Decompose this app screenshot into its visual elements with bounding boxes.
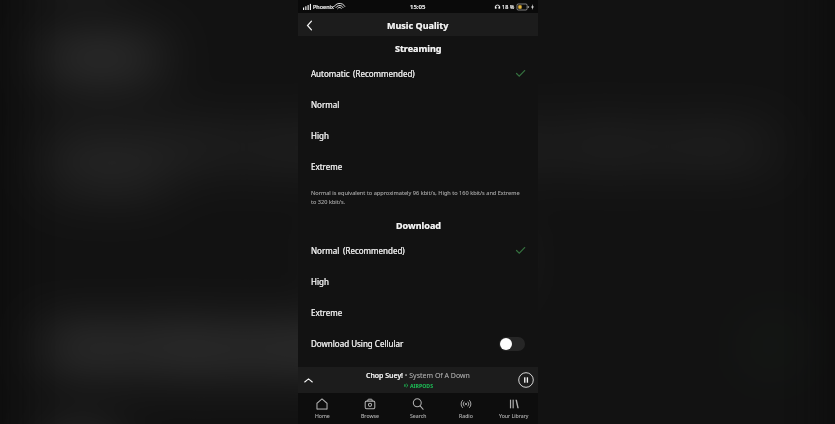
- staticText: (Recommended): [160, 326, 374, 364]
- button[interactable]: Back: [298, 14, 320, 36]
- staticText: Your Library: [499, 412, 529, 419]
- button[interactable]: Radio: [442, 393, 490, 424]
- staticText: Chop Suey!: [366, 371, 403, 381]
- button[interactable]: Home: [298, 393, 346, 424]
- button[interactable]: Pause: [518, 372, 534, 388]
- button[interactable]: Automatic: [298, 58, 538, 89]
- staticText: Automatic: [311, 68, 350, 79]
- button[interactable]: Download Using Cellular: [298, 328, 538, 359]
- staticText: Radio: [459, 412, 473, 419]
- staticText: Search: [410, 412, 427, 419]
- staticText: Download: [343, 236, 499, 277]
- staticText: (Recommended): [353, 68, 415, 79]
- staticText: Phoenix: [313, 3, 334, 10]
- staticText: Normal is equivalent to approximately 96…: [50, 133, 771, 188]
- staticText: Extreme: [311, 307, 343, 318]
- button[interactable]: Extreme: [5, 1, 833, 108]
- button[interactable]: Normal: [5, 291, 833, 398]
- button[interactable]: Extreme: [298, 151, 538, 182]
- staticText: High: [311, 130, 329, 141]
- staticText: High: [311, 276, 329, 287]
- button[interactable]: High: [298, 266, 538, 297]
- staticText: 18 %: [502, 3, 515, 10]
- staticText: • System Of A Down: [403, 371, 470, 381]
- staticText: AIRPODS: [410, 382, 433, 389]
- staticText: 15:05: [410, 3, 426, 11]
- staticText: (Recommended): [343, 245, 405, 256]
- button[interactable]: High: [298, 120, 538, 151]
- button[interactable]: Normal: [298, 235, 538, 266]
- staticText: Download: [396, 219, 441, 231]
- staticText: Normal is equivalent to approximately 96…: [311, 189, 520, 205]
- staticText: Music Quality: [387, 19, 449, 31]
- button[interactable]: Extreme: [298, 297, 538, 328]
- button[interactable]: Expand player: [298, 370, 318, 390]
- staticText: Download Using Cellular: [311, 338, 404, 349]
- staticText: Normal: [311, 99, 340, 110]
- button[interactable]: High: [5, 398, 833, 424]
- button[interactable]: Your Library: [490, 393, 538, 424]
- button[interactable]: High: [5, 0, 833, 2]
- button[interactable]: Browse: [346, 393, 394, 424]
- button[interactable]: Search: [394, 393, 442, 424]
- staticText: Browse: [361, 412, 379, 419]
- staticText: Normal: [311, 245, 340, 256]
- staticText: Home: [315, 412, 330, 419]
- staticText: Extreme: [311, 161, 343, 172]
- button[interactable]: Normal: [298, 89, 538, 120]
- staticText: Streaming: [395, 42, 442, 54]
